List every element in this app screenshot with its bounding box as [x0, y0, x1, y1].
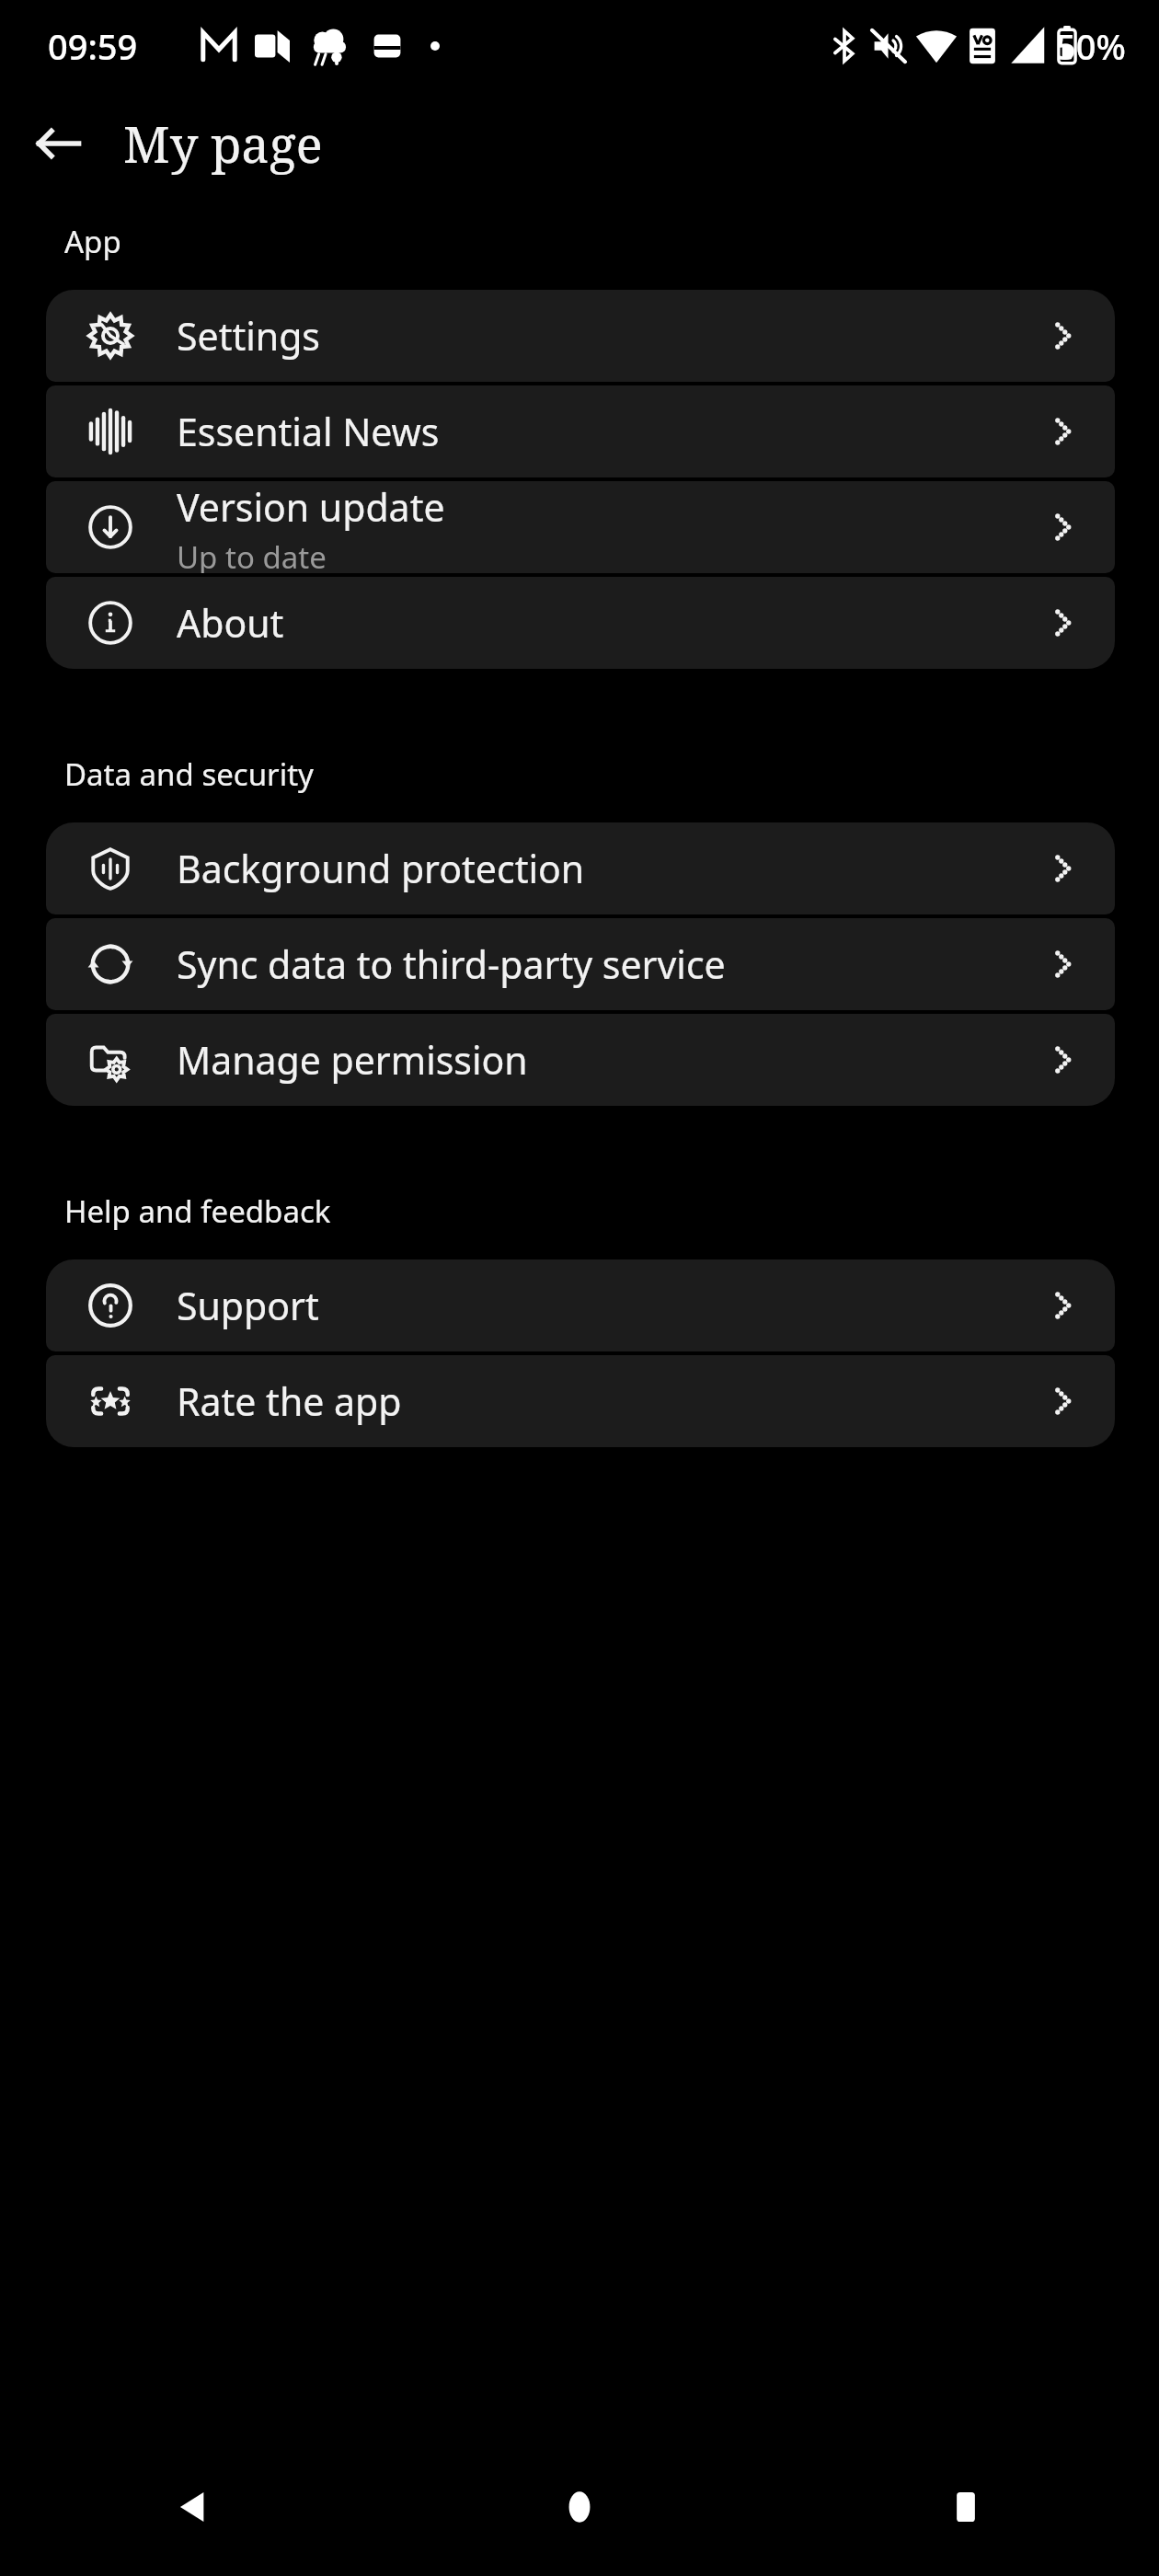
- staticText: Help and feedback: [64, 1190, 331, 1232]
- button[interactable]: Support: [46, 1259, 1115, 1351]
- button[interactable]: Sync data to third-party service: [46, 918, 1115, 1010]
- staticText: Essential News: [177, 406, 440, 457]
- button[interactable]: About: [46, 577, 1115, 669]
- staticText: Version update: [177, 481, 445, 533]
- button[interactable]: Manage permission: [46, 1014, 1115, 1106]
- staticText: Settings: [177, 310, 321, 362]
- staticText: Data and security: [64, 753, 314, 795]
- staticText: App: [64, 221, 121, 262]
- button[interactable]: Home: [386, 2438, 773, 2576]
- button[interactable]: Rate the app: [46, 1355, 1115, 1447]
- button[interactable]: Back: [22, 107, 96, 180]
- staticText: Sync data to third-party service: [177, 938, 726, 990]
- button[interactable]: Essential News: [46, 385, 1115, 477]
- button[interactable]: Recents: [773, 2438, 1159, 2576]
- button[interactable]: Version update: [46, 481, 1115, 573]
- staticText: 09:59: [48, 22, 138, 70]
- staticText: Background protection: [177, 843, 585, 894]
- staticText: Support: [177, 1280, 319, 1331]
- staticText: Manage permission: [177, 1034, 528, 1086]
- staticText: My page: [123, 109, 323, 178]
- staticText: 50%: [1056, 22, 1126, 70]
- button[interactable]: Background protection: [46, 822, 1115, 914]
- staticText: About: [177, 597, 284, 649]
- button[interactable]: Back: [0, 2438, 386, 2576]
- button[interactable]: Settings: [46, 290, 1115, 382]
- staticText: Up to date: [177, 536, 327, 573]
- staticText: Rate the app: [177, 1375, 402, 1427]
